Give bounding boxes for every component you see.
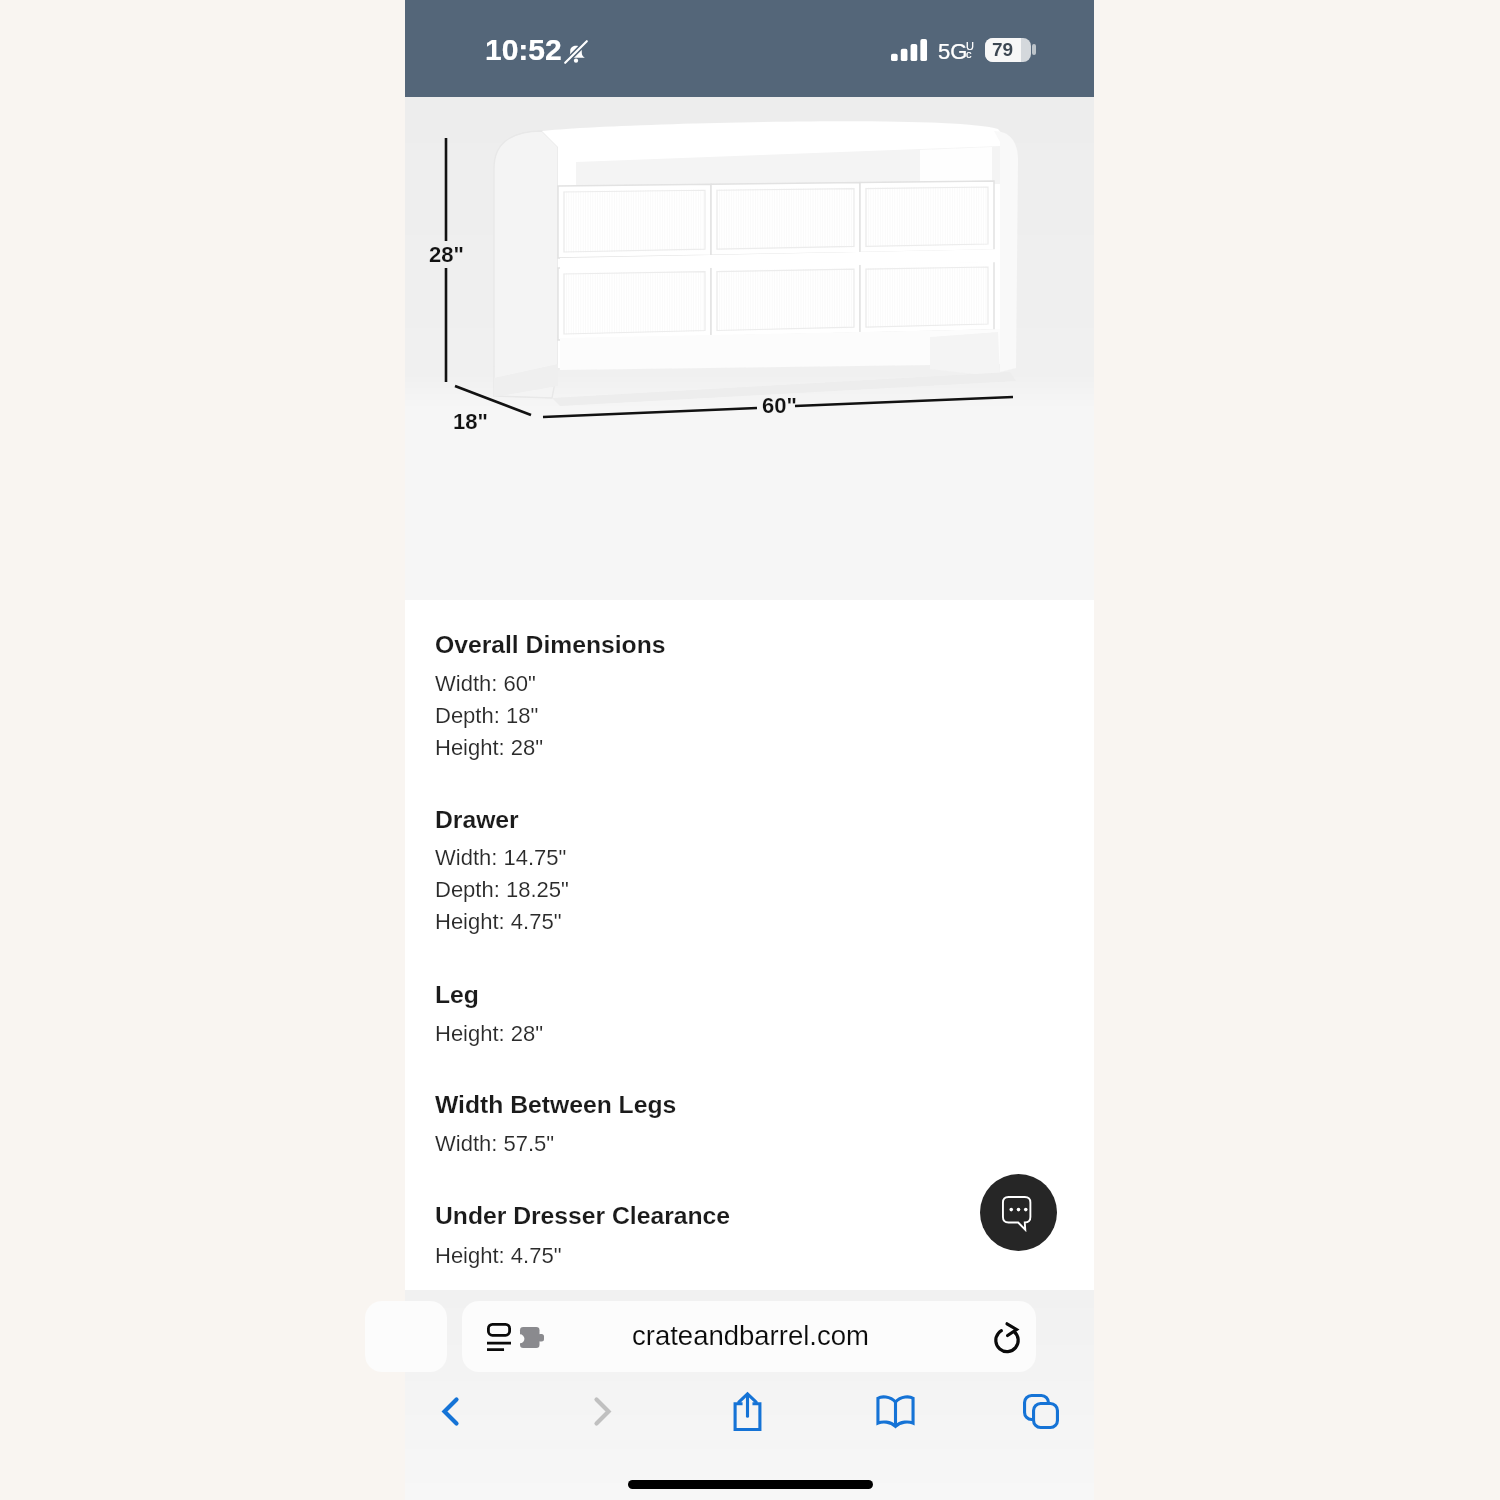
staticText: 18" [453, 409, 488, 434]
button[interactable]: crateandbarrel.com [462, 1301, 1036, 1372]
staticText: Drawer [435, 806, 519, 834]
staticText: 10:52 [485, 33, 562, 67]
staticText: Depth: 18" [435, 703, 539, 728]
staticText: 28" [429, 242, 464, 267]
button[interactable]: Tabs [997, 1377, 1085, 1445]
staticText: Overall Dimensions [435, 631, 666, 659]
staticText: crateandbarrel.com [632, 1320, 869, 1351]
staticText: Width: 57.5" [435, 1131, 555, 1156]
button[interactable]: Chat with us [980, 1174, 1057, 1251]
staticText: U [966, 40, 974, 52]
staticText: Height: 4.75" [435, 1243, 562, 1268]
staticText: Depth: 18.25" [435, 877, 569, 902]
staticText: Width Between Legs [435, 1091, 677, 1119]
button[interactable]: Reload page [993, 1322, 1021, 1352]
staticText: 5G [938, 39, 968, 64]
staticText: Height: 28" [435, 735, 544, 760]
staticText: c [966, 48, 972, 60]
staticText: Width: 60" [435, 671, 536, 696]
staticText: Height: 28" [435, 1021, 544, 1046]
staticText: Height: 4.75" [435, 909, 562, 934]
staticText: Width: 14.75" [435, 845, 567, 870]
button[interactable]: Share [703, 1377, 791, 1445]
staticText: 79 [992, 39, 1014, 60]
button[interactable]: Bookmarks [851, 1377, 939, 1445]
staticText: Leg [435, 981, 479, 1009]
staticText: Under Dresser Clearance [435, 1202, 731, 1230]
staticText: 60" [762, 393, 797, 418]
button[interactable]: Forward [558, 1377, 646, 1445]
button[interactable]: Page settings [487, 1323, 545, 1351]
button[interactable]: Back [406, 1377, 494, 1445]
